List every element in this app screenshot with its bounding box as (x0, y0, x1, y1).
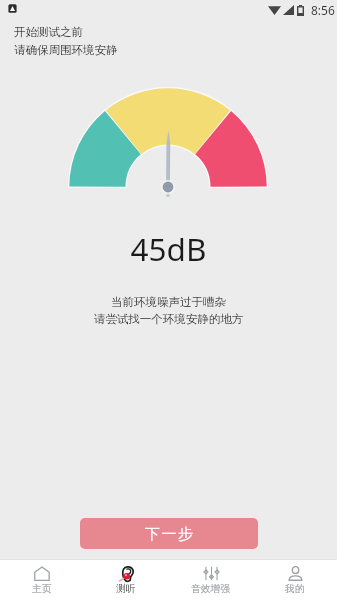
staticText: 开始测试之前 (14, 25, 83, 39)
button[interactable]: 测听 (84, 560, 168, 600)
staticText: 音效增强 (191, 583, 231, 595)
staticText: 下一步 (145, 525, 195, 544)
button[interactable]: 我的 (253, 560, 337, 600)
button[interactable]: 音效增强 (169, 560, 253, 600)
staticText: 8:56 (311, 2, 335, 18)
staticText: 主页 (32, 583, 52, 595)
staticText: 请确保周围环境安静 (14, 43, 118, 57)
staticText: 测听 (116, 583, 136, 595)
staticText: 当前环境噪声过于嘈杂 请尝试找一个环境安静的地方 (0, 295, 337, 326)
staticText: 45dB (0, 227, 337, 270)
button[interactable]: 下一步 (80, 518, 258, 549)
staticText: 我的 (285, 583, 305, 595)
button[interactable]: 主页 (0, 560, 84, 600)
